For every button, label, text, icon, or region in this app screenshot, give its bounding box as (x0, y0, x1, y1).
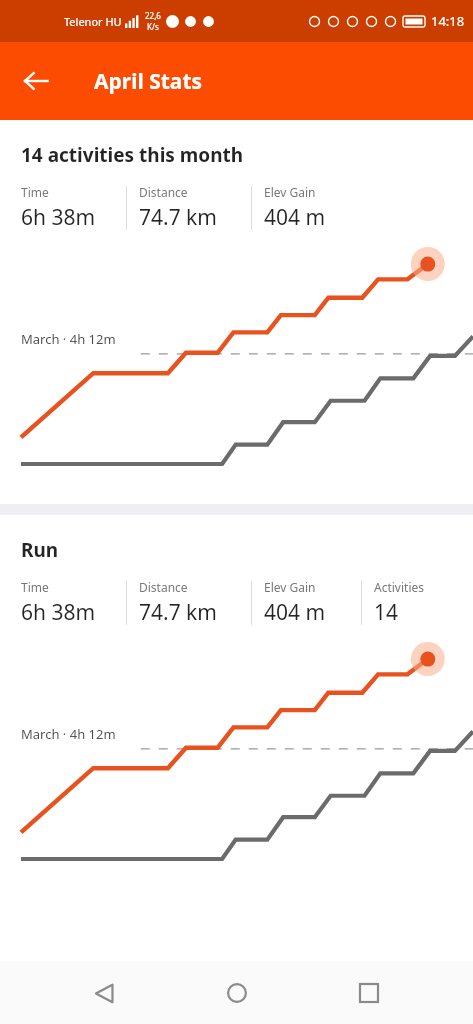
staticText: 22,6 (145, 10, 161, 21)
staticText: Elev Gain (264, 579, 316, 595)
staticText: 6h 38m (21, 598, 96, 627)
staticText: Time (21, 184, 49, 200)
staticText: 14 (374, 598, 399, 627)
staticText: Distance (139, 184, 188, 200)
staticText: Distance (139, 579, 188, 595)
staticText: 74.7 km (139, 203, 217, 232)
staticText: March · 4h 12m (21, 725, 116, 743)
staticText: Telenor HU (64, 14, 122, 29)
staticText: March · 4h 12m (21, 330, 116, 348)
button[interactable]: Back (10, 55, 62, 107)
staticText: Time (21, 579, 49, 595)
staticText: 74.7 km (139, 598, 217, 627)
button[interactable]: Recent apps (340, 964, 398, 1022)
staticText: Run (21, 537, 59, 563)
button[interactable]: Back (75, 964, 133, 1022)
staticText: 404 m (264, 598, 326, 627)
staticText: Elev Gain (264, 184, 316, 200)
staticText: April Stats (94, 67, 203, 96)
staticText: 14:18 (431, 12, 465, 30)
button[interactable]: Home (208, 964, 266, 1022)
staticText: 14 activities this month (21, 142, 244, 168)
staticText: 6h 38m (21, 203, 96, 232)
staticText: Activities (374, 579, 424, 595)
staticText: 404 m (264, 203, 326, 232)
staticText: K/s (147, 21, 159, 32)
